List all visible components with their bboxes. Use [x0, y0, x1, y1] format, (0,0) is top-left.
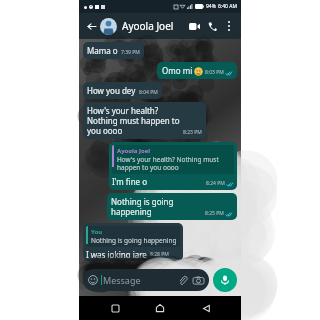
button[interactable]: Voice message — [213, 268, 237, 292]
staticText: 8:28 PM — [150, 251, 169, 258]
staticText: Nothing is going happening — [111, 196, 202, 217]
staticText: 8:24 PM — [206, 180, 225, 187]
button[interactable]: Voice call — [203, 17, 221, 35]
staticText: 8:03 PM — [205, 69, 224, 76]
button[interactable]: How you dey — [83, 82, 162, 99]
button[interactable]: Back — [196, 298, 216, 318]
staticText: Message — [103, 274, 178, 286]
staticText: 8:25 PM — [205, 210, 224, 217]
other: Attach — [178, 275, 188, 285]
other: Camera — [193, 276, 204, 285]
staticText: Nothing is going happening — [91, 236, 177, 245]
button[interactable]: Ayoola Joel — [122, 19, 185, 33]
staticText: 6:40 AM — [218, 3, 237, 10]
button[interactable]: Home — [150, 298, 170, 318]
button[interactable]: How's your health? Nothing must happen t… — [83, 102, 206, 139]
staticText: Omo mi — [162, 65, 193, 76]
staticText: How's your health? Nothing must happen t… — [117, 155, 232, 172]
staticText: Mama o — [87, 45, 118, 56]
button[interactable]: Recents — [105, 298, 125, 318]
button[interactable]: Ayoola Joel — [109, 142, 237, 190]
staticText: How's your health? Nothing must happen t… — [87, 105, 180, 136]
staticText: 8:23 PM — [183, 129, 202, 136]
staticText: How you dey — [87, 85, 136, 96]
staticText: You — [91, 228, 103, 236]
button[interactable]: You — [83, 223, 183, 261]
button[interactable]: More options — [221, 18, 237, 34]
button[interactable]: Omo mi — [157, 62, 237, 79]
button[interactable]: Emoji — [83, 269, 209, 291]
staticText: I'm fine o — [112, 176, 206, 187]
button[interactable]: Nothing is going happening — [107, 193, 237, 220]
button[interactable]: Mama o — [83, 42, 144, 59]
button[interactable]: Profile photo — [100, 18, 117, 35]
staticText: I was joking jare — [86, 249, 147, 258]
button[interactable]: Back — [83, 18, 99, 34]
staticText: Ayoola Joel — [117, 147, 151, 155]
other: Emoji — [88, 275, 98, 285]
staticText: 94% — [206, 3, 216, 10]
staticText: 8:04 PM — [139, 89, 158, 96]
staticText: 7:39 PM — [121, 49, 140, 56]
button[interactable]: Video call — [185, 17, 203, 35]
